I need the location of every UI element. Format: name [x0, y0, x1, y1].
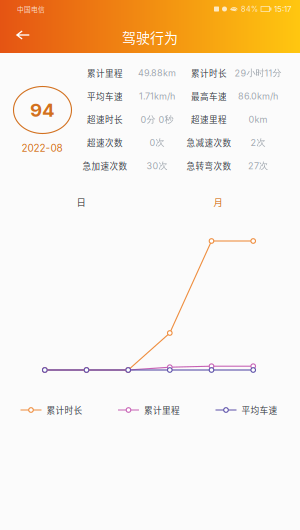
staticText: 日 [76, 195, 85, 209]
staticText: 急加速次数 [82, 160, 127, 172]
staticText: 累计里程 [144, 404, 180, 416]
staticText: 86.0km/h [238, 91, 278, 102]
staticText: 15:17 [274, 4, 292, 14]
staticText: 中国电信 [17, 4, 45, 14]
staticText: 月 [213, 195, 222, 209]
staticText: 30次 [146, 160, 167, 171]
button[interactable]: 日 [51, 191, 111, 213]
staticText: 49.88km [138, 67, 176, 78]
staticText: 超速里程 [191, 113, 227, 126]
staticText: 94 [30, 99, 55, 121]
staticText: 急转弯次数 [186, 160, 231, 172]
staticText: 驾驶行为 [122, 27, 178, 47]
staticText: 0分 0秒 [140, 114, 173, 125]
staticText: 0次 [149, 137, 164, 148]
staticText: 84% [241, 5, 258, 13]
staticText: 累计时长 [191, 67, 227, 79]
staticText: 累计时长 [46, 404, 82, 416]
staticText: 累计里程 [87, 67, 123, 79]
staticText: 平均车速 [241, 404, 277, 416]
staticText: 平均车速 [87, 90, 123, 102]
staticText: 2次 [250, 137, 265, 148]
button[interactable]: 月 [188, 191, 248, 213]
staticText: 0km [248, 114, 267, 125]
staticText: 急减速次数 [186, 136, 231, 149]
staticText: 1.71km/h [139, 91, 175, 102]
staticText: 29小时11分 [234, 67, 281, 79]
staticText: 超速次数 [87, 136, 123, 149]
staticText: 超速时长 [87, 113, 123, 126]
staticText: 最高车速 [191, 90, 227, 102]
button[interactable]: Back [7, 22, 38, 48]
staticText: 27次 [248, 160, 268, 171]
staticText: 2022-08 [21, 142, 62, 154]
